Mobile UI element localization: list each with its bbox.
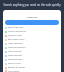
- button[interactable]: Recent searches: [3, 26, 61, 30]
- staticText: Recipes for dinner: [8, 66, 26, 69]
- button[interactable]: Local events: [3, 70, 61, 72]
- button[interactable]: Recipes for dinner: [3, 66, 61, 70]
- staticText: Recent searches: [8, 26, 24, 29]
- button[interactable]: News headlines: [3, 42, 61, 46]
- button[interactable]: Best coffee shops: [3, 38, 61, 42]
- staticText: Travel destinations: [8, 46, 26, 49]
- staticText: Logotype: [3, 15, 61, 18]
- staticText: Sports scores: [8, 62, 21, 65]
- staticText: Search anything you need on the web quic…: [3, 3, 61, 7]
- staticText: Shopping deals: [8, 58, 23, 61]
- staticText: Music playlists: [8, 50, 22, 53]
- staticText: Movie releases: [8, 54, 22, 57]
- button[interactable]: Shopping deals: [3, 58, 61, 62]
- button[interactable]: Movie releases: [3, 54, 61, 58]
- staticText: Weather today: [8, 34, 22, 37]
- button[interactable]: Music playlists: [3, 50, 61, 54]
- staticText: Local events: [8, 70, 20, 72]
- button[interactable]: Search: [5, 20, 59, 25]
- staticText: Best coffee shops: [8, 38, 25, 41]
- button[interactable]: Nearby restaurants: [3, 30, 61, 34]
- staticText: Nearby restaurants: [8, 30, 27, 33]
- button[interactable]: Travel destinations: [3, 46, 61, 50]
- button[interactable]: Sports scores: [3, 62, 61, 66]
- staticText: News headlines: [8, 42, 23, 45]
- button[interactable]: Weather today: [3, 34, 61, 38]
